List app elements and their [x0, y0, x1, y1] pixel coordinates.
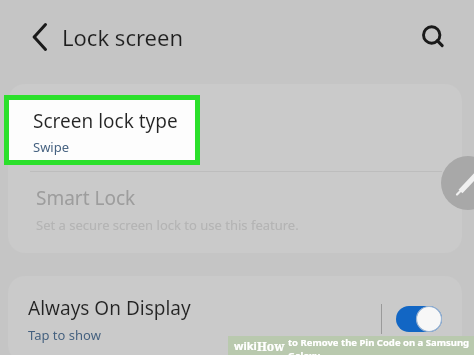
- staticText: Smart Lock: [36, 185, 136, 211]
- button[interactable]: Edit: [441, 156, 474, 210]
- staticText: Lock screen: [62, 22, 184, 52]
- button[interactable]: Back: [22, 18, 60, 56]
- button[interactable]: Smart Lock: [8, 172, 462, 253]
- button[interactable]: Search: [414, 18, 452, 56]
- staticText: to Remove the Pin Code on a Samsung Gala…: [288, 336, 474, 355]
- button[interactable]: [8, 84, 462, 171]
- staticText: Set a secure screen lock to use this fea…: [36, 216, 299, 234]
- staticText: wiki: [234, 338, 257, 353]
- staticText: Swipe: [33, 138, 70, 156]
- staticText: Tap to show: [28, 326, 101, 344]
- button[interactable]: Screen lock type: [9, 100, 195, 160]
- button[interactable]: Always On Display: [8, 276, 462, 355]
- button[interactable]: Always On Display toggle: [396, 306, 442, 332]
- staticText: Screen lock type: [33, 108, 178, 134]
- staticText: How: [257, 338, 285, 354]
- staticText: Always On Display: [28, 295, 191, 321]
